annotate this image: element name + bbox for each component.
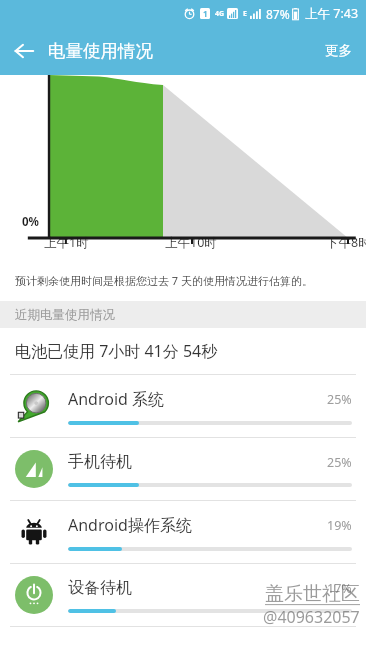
staticText: Android操作系统 bbox=[68, 514, 192, 536]
button[interactable]: 更多 bbox=[311, 32, 366, 69]
staticText: 上午 7:43 bbox=[305, 5, 359, 22]
button[interactable]: 手机待机 bbox=[0, 438, 366, 500]
button[interactable]: Android 系统 bbox=[0, 375, 366, 437]
staticText: 预计剩余使用时间是根据您过去 7 天的使用情况进行估算的。 bbox=[15, 273, 314, 288]
staticText: E bbox=[243, 9, 247, 19]
staticText: 4G bbox=[215, 9, 225, 19]
staticText: @409632057 bbox=[263, 606, 360, 628]
staticText: 19% bbox=[327, 517, 352, 534]
staticText: 上午10时 bbox=[165, 234, 217, 251]
staticText: 电量使用情况 bbox=[48, 40, 153, 62]
staticText: 下午8时 bbox=[326, 234, 366, 251]
button[interactable]: 返回 bbox=[0, 27, 48, 75]
staticText: 25% bbox=[327, 391, 352, 408]
staticText: 设备待机 bbox=[68, 578, 132, 598]
staticText: 上午1时 bbox=[44, 234, 89, 251]
staticText: 更多 bbox=[325, 42, 352, 59]
staticText: 87% bbox=[266, 6, 290, 22]
staticText: 25% bbox=[327, 454, 352, 471]
staticText: Android 系统 bbox=[68, 388, 165, 410]
staticText: 近期电量使用情况 bbox=[15, 307, 115, 323]
staticText: 电池已使用 7小时 41分 54秒 bbox=[15, 340, 218, 362]
staticText: 盖乐世社区 bbox=[265, 582, 360, 606]
button[interactable]: 设备待机 bbox=[0, 564, 366, 626]
staticText: 17% bbox=[327, 580, 352, 597]
staticText: 手机待机 bbox=[68, 452, 132, 472]
button[interactable]: Android操作系统 bbox=[0, 501, 366, 563]
staticText: 0% bbox=[22, 214, 39, 230]
staticText: 1 bbox=[203, 8, 208, 19]
